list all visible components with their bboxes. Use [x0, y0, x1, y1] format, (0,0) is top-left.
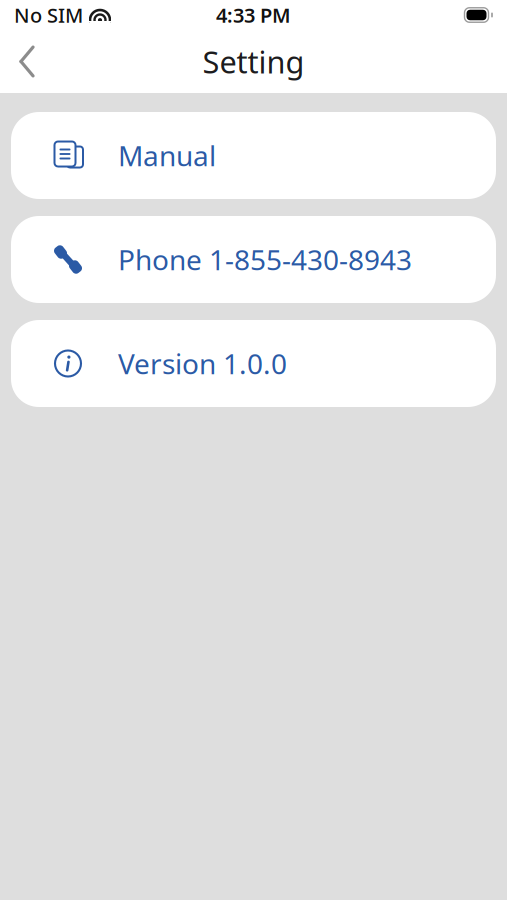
button[interactable]: Back	[0, 30, 54, 92]
staticText: No SIM	[14, 2, 83, 28]
button[interactable]: Phone 1-855-430-8943	[11, 216, 496, 303]
staticText: 4:33 PM	[216, 2, 291, 28]
staticText: Setting	[202, 41, 304, 82]
staticText: Version 1.0.0	[118, 345, 287, 382]
staticText: Phone 1-855-430-8943	[118, 241, 412, 278]
button[interactable]: Manual	[11, 112, 496, 199]
staticText: Manual	[118, 137, 216, 174]
button[interactable]: Version 1.0.0	[11, 320, 496, 407]
